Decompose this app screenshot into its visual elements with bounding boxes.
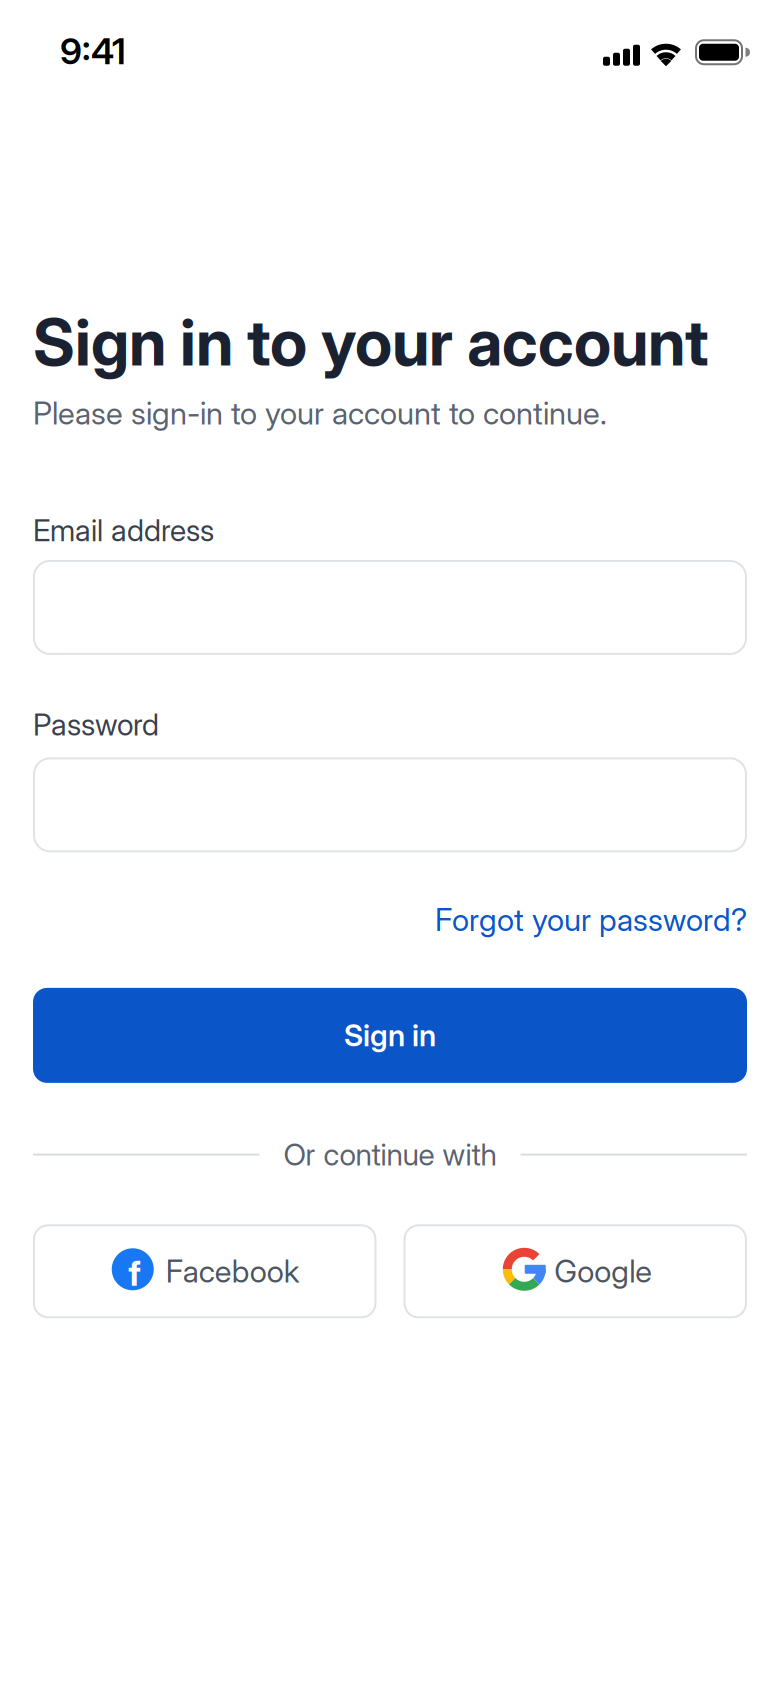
- staticText: Facebook: [166, 1253, 300, 1290]
- staticText: Or continue with: [283, 1137, 496, 1172]
- button[interactable]: f: [33, 1224, 376, 1318]
- staticText: 9:41: [60, 30, 126, 72]
- button[interactable]: Email address: [33, 560, 747, 655]
- button[interactable]: Google: [403, 1224, 747, 1318]
- staticText: Email address: [33, 512, 214, 548]
- staticText: Google: [554, 1253, 652, 1290]
- button[interactable]: Password: [33, 757, 747, 852]
- staticText: Please sign-in to your account to contin…: [33, 395, 607, 432]
- button[interactable]: Sign in: [33, 988, 747, 1083]
- staticText: f: [128, 1253, 141, 1293]
- staticText: Password: [33, 707, 159, 742]
- staticText: Forgot your password?: [435, 901, 747, 938]
- button[interactable]: Forgot your password?: [435, 901, 747, 938]
- staticText: Sign in: [344, 1018, 436, 1053]
- staticText: Sign in to your account: [33, 304, 709, 380]
